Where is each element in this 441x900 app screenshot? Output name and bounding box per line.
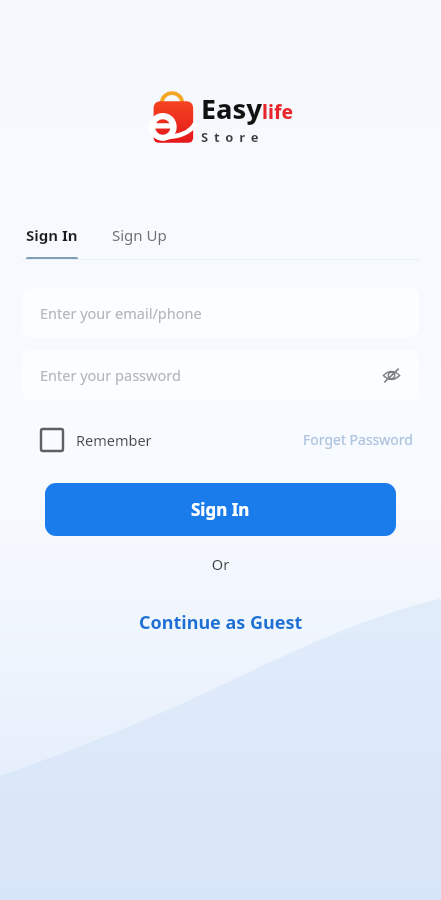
staticText: Sign In (191, 498, 250, 521)
button[interactable]: Remember (41, 429, 152, 451)
button[interactable]: Sign Up (110, 221, 169, 260)
button[interactable]: Forget Password (299, 426, 417, 453)
staticText: Sign In (26, 225, 78, 245)
staticText: Enter your password (40, 365, 181, 385)
staticText: Remember (76, 430, 152, 450)
button[interactable]: Continue as Guest (129, 606, 313, 639)
staticText: Enter your email/phone (40, 303, 202, 323)
staticText: S t o r e (201, 128, 260, 146)
button[interactable]: Sign In (24, 221, 80, 249)
button[interactable]: Enter your email/phone (22, 288, 419, 337)
staticText: Sign Up (112, 225, 167, 245)
staticText: Easylife (201, 90, 293, 127)
staticText: Forget Password (303, 430, 413, 449)
staticText: Continue as Guest (139, 610, 303, 635)
button[interactable]: Sign In (45, 483, 396, 536)
button[interactable]: Show password (377, 361, 405, 389)
button[interactable]: Enter your password (22, 350, 419, 400)
staticText: Or (0, 554, 441, 574)
